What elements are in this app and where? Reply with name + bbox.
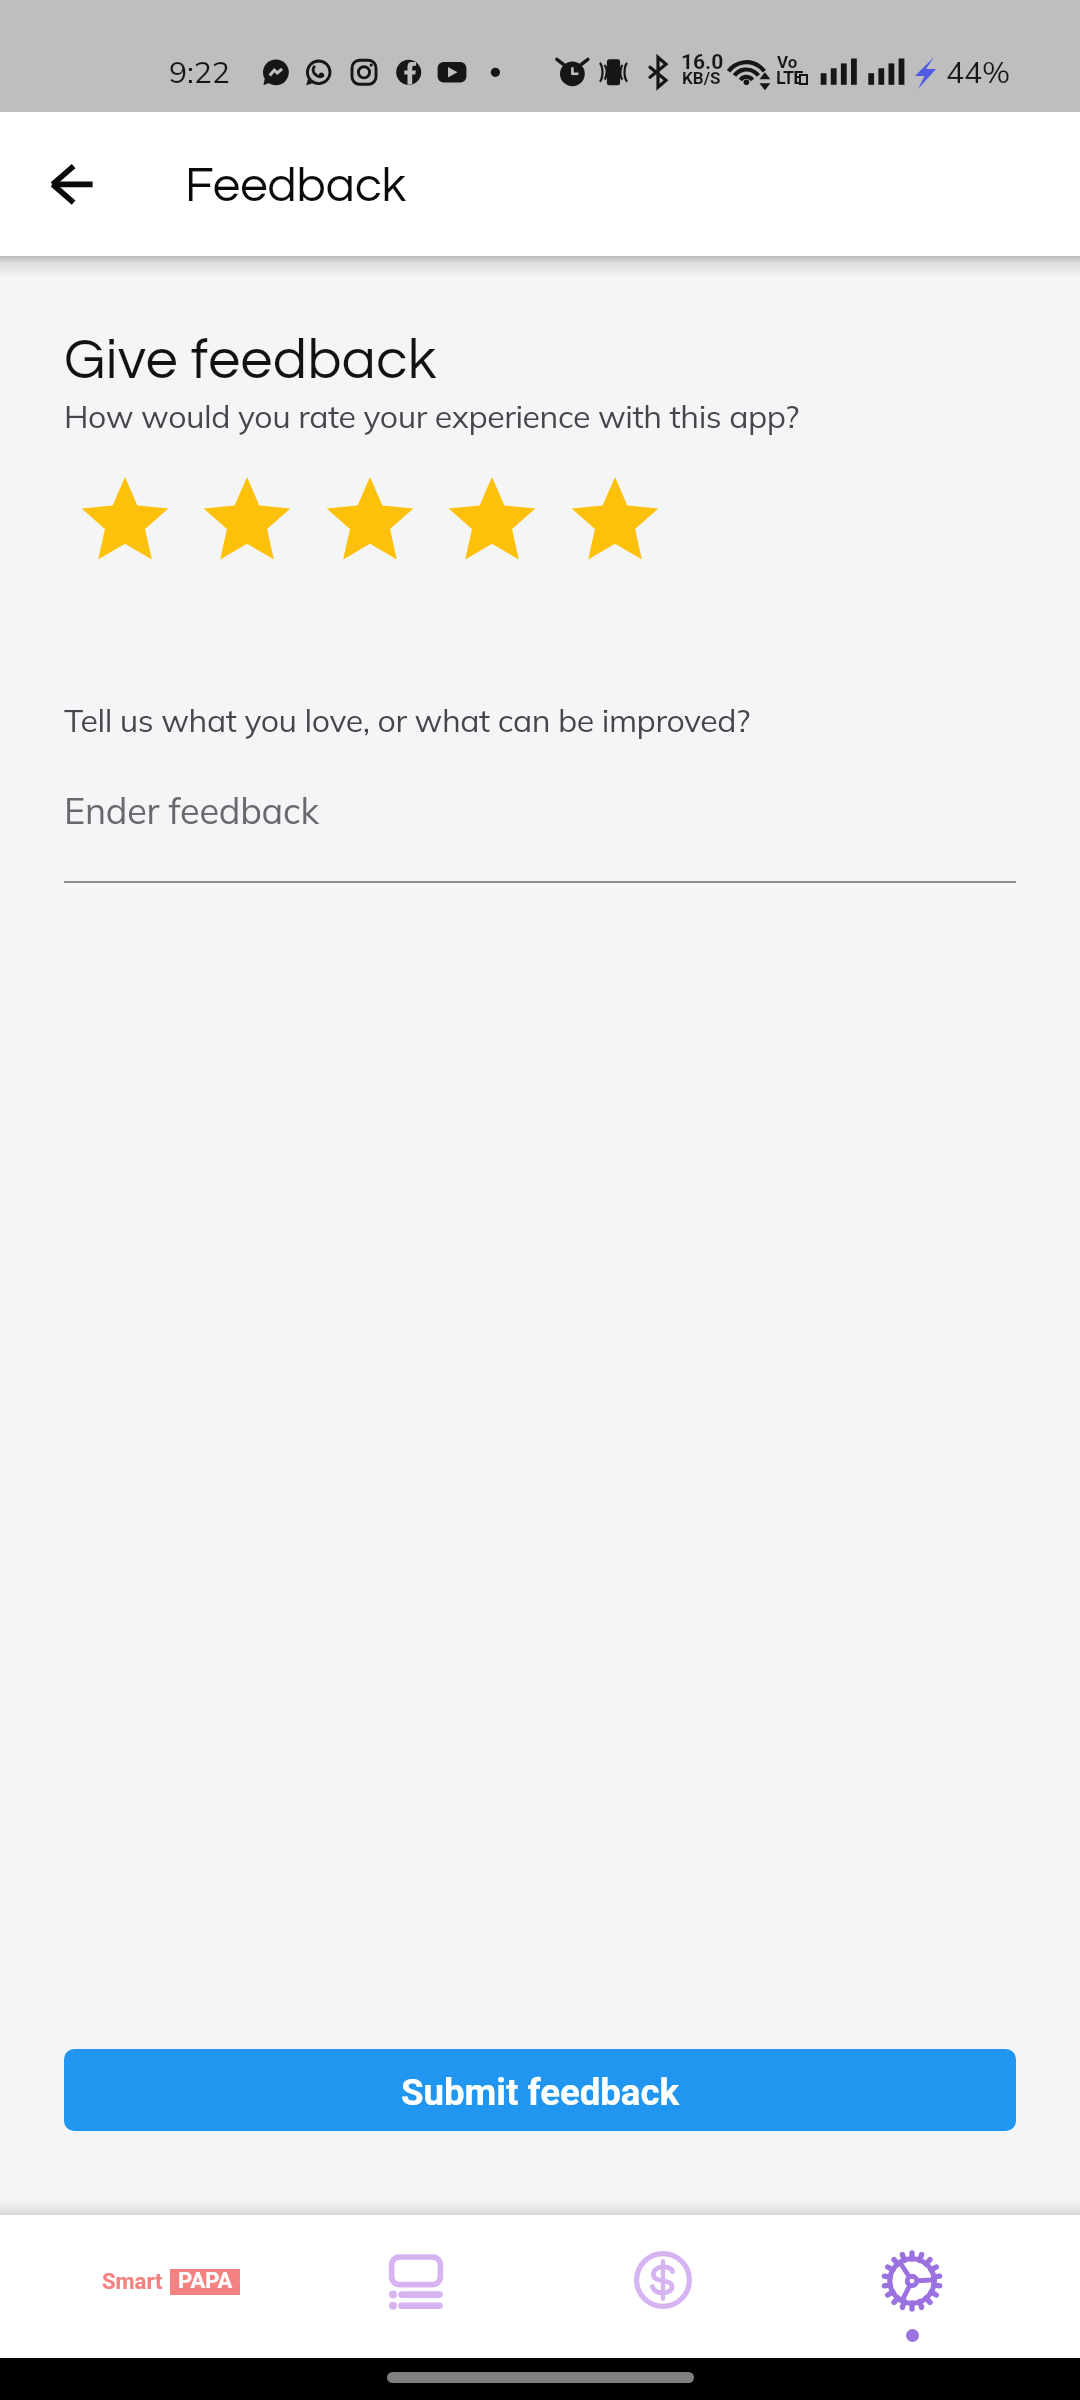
button[interactable]: Rate 4 of 5 stars [431,472,553,573]
staticText: Smart [102,2269,163,2295]
button[interactable]: Rate 3 of 5 stars [309,472,431,573]
button[interactable]: Rate 1 of 5 stars [64,472,186,573]
staticText: 9:22 [169,53,230,91]
staticText: How would you rate your experience with … [64,396,799,436]
button[interactable]: Dashboard [356,2222,476,2345]
button[interactable]: Submit feedback [64,2049,1016,2131]
button[interactable]: Smart PAPA home [60,2220,280,2353]
button[interactable]: Settings [852,2215,972,2358]
staticText: Tell us what you love, or what can be im… [64,700,751,740]
staticText: Give feedback [64,331,438,390]
button[interactable]: Rate 2 of 5 stars [186,472,308,573]
staticText: Ender feedback [64,788,319,833]
button[interactable]: Back [28,140,116,228]
staticText: 16.0 [681,50,724,75]
button[interactable]: Rate 5 of 5 stars [554,472,676,573]
staticText: LTE [776,67,803,88]
staticText: Feedback [185,161,407,211]
staticText: Submit feedback [401,2071,680,2114]
staticText: KB/S [682,68,721,88]
staticText: Vo [777,52,798,72]
button[interactable]: Payments [603,2220,723,2340]
staticText: 44% [946,53,1011,91]
staticText: PAPA [178,2268,233,2294]
